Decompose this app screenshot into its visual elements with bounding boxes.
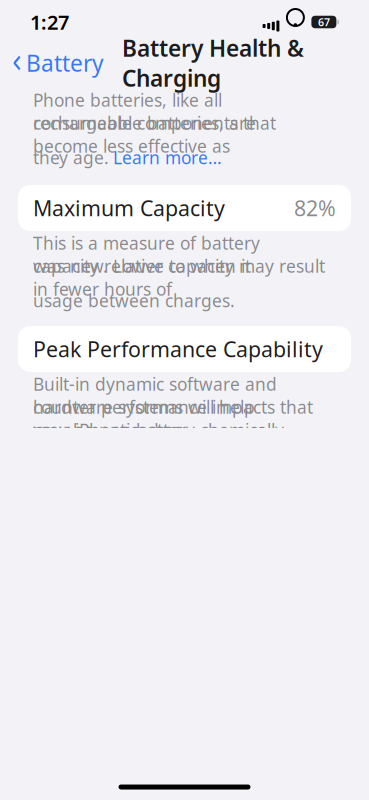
staticText: consumable components that become less e… (33, 111, 276, 157)
button[interactable]: Peak Performance Capability (18, 326, 351, 372)
staticText: 67 (318, 15, 330, 29)
staticText: usage between charges. (33, 289, 235, 312)
staticText: was new. Lower capacity may result in fe… (33, 254, 325, 300)
button[interactable]: Battery (0, 42, 104, 84)
staticText: This is a measure of battery capacity re… (33, 231, 260, 277)
staticText: Built-in dynamic software and hardware s… (33, 372, 277, 418)
staticText: they age. (33, 146, 109, 169)
staticText: Battery (26, 48, 104, 78)
button[interactable]: Maximum Capacity (18, 185, 351, 231)
staticText: 82% (294, 194, 336, 222)
staticText: 1:27 (30, 9, 69, 35)
staticText: Learn more… (113, 146, 222, 169)
staticText: Maximum Capacity (33, 194, 225, 222)
staticText: Phone batteries, like all rechargeable b… (33, 88, 256, 134)
button[interactable]: Learn more… (113, 146, 222, 169)
staticText: counter performance impacts that may be … (33, 395, 313, 441)
staticText: Battery Health & Charging (122, 33, 304, 93)
staticText: Peak Performance Capability (33, 335, 323, 363)
staticText: your iPhone battery chemically ages. (33, 418, 284, 464)
